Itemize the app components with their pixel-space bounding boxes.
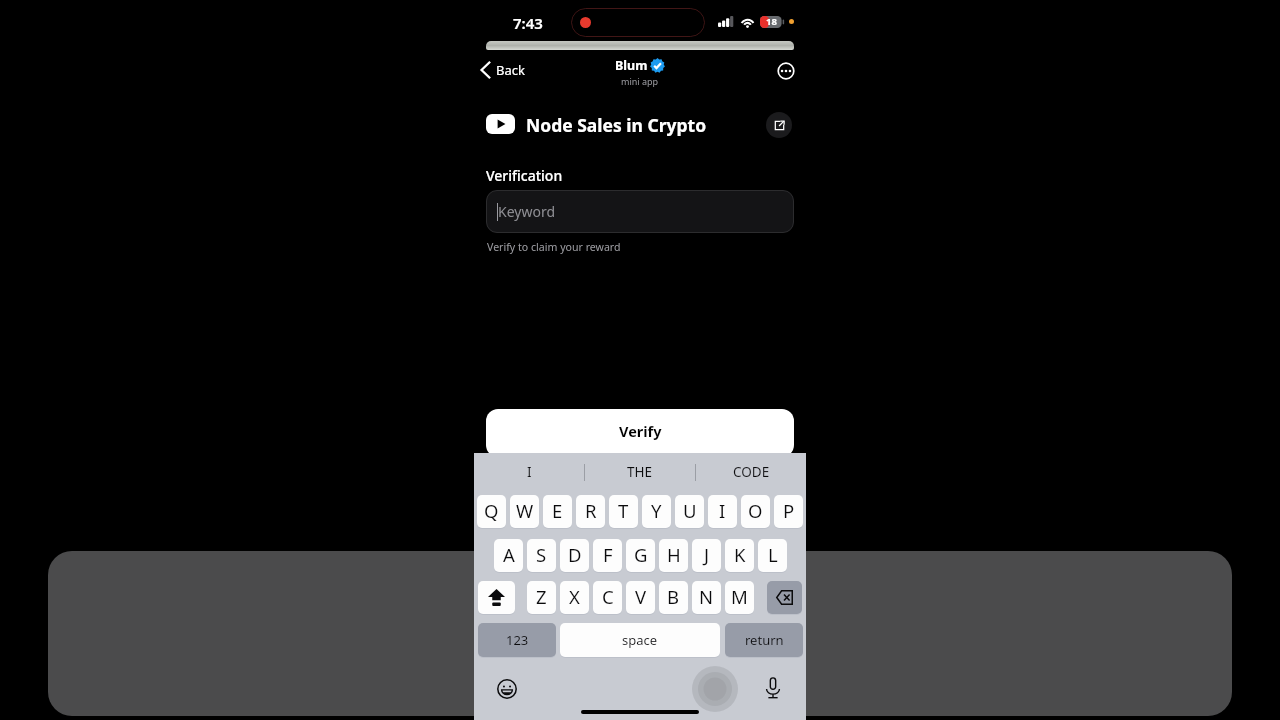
button[interactable]: Y (642, 495, 671, 528)
button[interactable]: Back (480, 61, 525, 79)
button[interactable]: Dictation (766, 677, 780, 699)
button[interactable]: D (560, 539, 589, 572)
button[interactable]: R (576, 495, 605, 528)
staticText: Verify (619, 421, 662, 441)
button[interactable]: Verify (486, 409, 794, 457)
button[interactable]: N (692, 581, 721, 614)
button[interactable]: A (494, 539, 523, 572)
button[interactable]: 123 (478, 623, 556, 657)
staticText: M (731, 584, 748, 609)
staticText: 123 (506, 631, 529, 649)
button[interactable]: Shift (478, 581, 515, 614)
button[interactable]: return (725, 623, 803, 657)
button[interactable]: E (543, 495, 572, 528)
staticText: T (618, 498, 629, 523)
button[interactable]: H (659, 539, 688, 572)
staticText: mini app (621, 75, 659, 87)
staticText: I (527, 463, 532, 481)
button[interactable]: F (593, 539, 622, 572)
button[interactable]: I (474, 453, 584, 491)
button[interactable]: Emoji (497, 679, 517, 699)
staticText: V (635, 584, 647, 609)
button[interactable]: K (725, 539, 754, 572)
staticText: J (704, 542, 710, 567)
button[interactable]: B (659, 581, 688, 614)
staticText: space (622, 631, 658, 649)
staticText: G (634, 542, 648, 567)
staticText: X (569, 584, 580, 609)
staticText: Y (651, 498, 662, 523)
staticText: W (516, 498, 534, 523)
staticText: K (734, 542, 746, 567)
button[interactable]: U (675, 495, 704, 528)
button[interactable]: O (741, 495, 770, 528)
button[interactable]: S (527, 539, 556, 572)
button[interactable]: L (758, 539, 787, 572)
staticText: Verify to claim your reward (487, 240, 621, 254)
button[interactable]: Q (477, 495, 506, 528)
staticText: P (783, 498, 795, 523)
staticText: Z (536, 584, 547, 609)
staticText: Blum (615, 57, 648, 74)
staticText: return (745, 631, 784, 649)
staticText: CODE (733, 463, 770, 481)
button[interactable]: More options (777, 62, 795, 80)
button[interactable]: P (774, 495, 803, 528)
staticText: 7:43 (513, 13, 543, 33)
staticText: Back (496, 61, 525, 79)
staticText: C (602, 584, 614, 609)
staticText: E (552, 498, 563, 523)
staticText: H (667, 542, 681, 567)
staticText: L (768, 542, 778, 567)
staticText: O (748, 498, 763, 523)
button[interactable]: W (510, 495, 539, 528)
button[interactable]: CODE (696, 453, 806, 491)
button[interactable]: Keyword (486, 190, 794, 233)
button[interactable]: V (626, 581, 655, 614)
staticText: 18 (766, 15, 777, 28)
button[interactable]: I (708, 495, 737, 528)
staticText: Node Sales in Crypto (526, 113, 707, 137)
button[interactable]: Node Sales in Crypto (486, 111, 756, 137)
button[interactable]: G (626, 539, 655, 572)
staticText: Verification (486, 166, 563, 185)
staticText: B (667, 584, 680, 609)
button[interactable]: THE (585, 453, 695, 491)
button[interactable]: J (692, 539, 721, 572)
staticText: A (503, 542, 515, 567)
button[interactable]: Open in browser (766, 112, 792, 138)
staticText: U (683, 498, 697, 523)
staticText: R (585, 498, 597, 523)
staticText: I (719, 498, 726, 523)
staticText: F (603, 542, 613, 567)
staticText: S (536, 542, 547, 567)
staticText: N (699, 584, 714, 609)
button[interactable]: X (560, 581, 589, 614)
staticText: THE (627, 463, 653, 481)
button[interactable]: Backspace (767, 581, 802, 614)
staticText: Keyword (498, 202, 556, 221)
button[interactable]: T (609, 495, 638, 528)
staticText: Q (484, 498, 499, 523)
button[interactable]: Z (527, 581, 556, 614)
button[interactable]: space (560, 623, 720, 657)
staticText: D (568, 542, 582, 567)
button[interactable]: C (593, 581, 622, 614)
button[interactable]: M (725, 581, 754, 614)
